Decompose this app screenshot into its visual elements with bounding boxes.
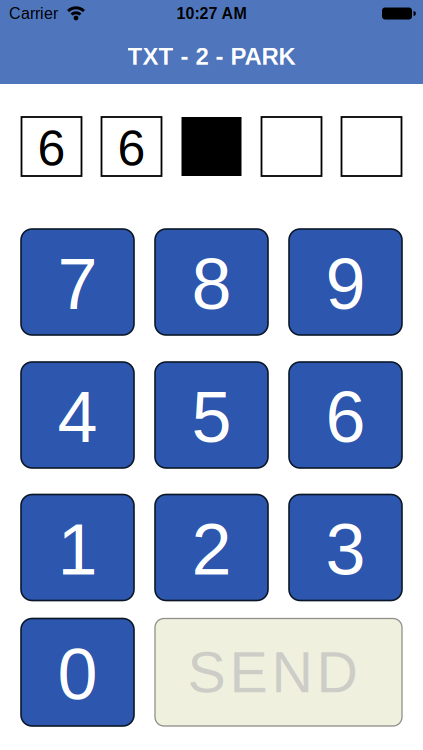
staticText: 0	[57, 634, 97, 714]
staticText: Carrier	[9, 5, 58, 22]
staticText: 4	[57, 377, 97, 457]
button[interactable]: 0	[21, 618, 134, 726]
button[interactable]: 7	[21, 229, 134, 335]
staticText: SEND	[187, 640, 357, 704]
button[interactable]: 8	[155, 229, 268, 335]
staticText: 6	[37, 121, 65, 176]
button[interactable]: 1	[21, 494, 134, 600]
button[interactable]: 5	[155, 362, 268, 468]
button[interactable]: 9	[289, 229, 402, 335]
staticText: 6	[117, 121, 145, 176]
staticText: 9	[325, 244, 365, 324]
staticText: 3	[325, 509, 365, 590]
staticText: TXT - 2 - PARK	[127, 43, 295, 70]
staticText: 7	[57, 244, 97, 324]
button[interactable]: 4	[21, 362, 134, 468]
button[interactable]: 2	[155, 494, 268, 600]
staticText: 10:27 AM	[176, 5, 246, 22]
staticText: 1	[57, 509, 97, 590]
button[interactable]: 3	[289, 494, 402, 600]
button[interactable]: 6	[289, 362, 402, 468]
staticText: 6	[325, 377, 365, 457]
staticText: 8	[191, 244, 231, 324]
staticText: 2	[191, 509, 231, 590]
button[interactable]: SEND	[155, 618, 402, 726]
staticText: 5	[191, 377, 231, 457]
